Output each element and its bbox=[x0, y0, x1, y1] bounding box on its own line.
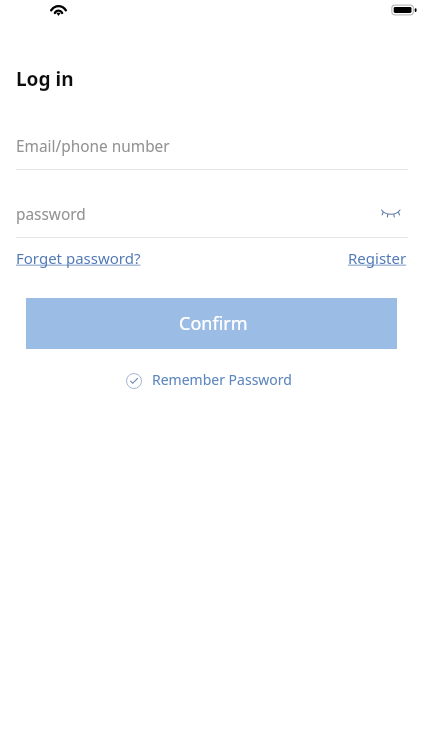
button[interactable]: Confirm bbox=[26, 298, 397, 349]
button[interactable]: Forget password? bbox=[10, 244, 146, 272]
staticText: Forget password? bbox=[16, 248, 141, 268]
button[interactable]: Show password bbox=[376, 200, 407, 238]
staticText: Email/phone number bbox=[16, 136, 170, 157]
staticText: Log in bbox=[16, 66, 74, 92]
button[interactable]: Remember Password bbox=[124, 369, 292, 393]
staticText: Remember Password bbox=[152, 370, 292, 389]
staticText: password bbox=[16, 204, 86, 225]
staticText: Confirm bbox=[179, 311, 248, 336]
button[interactable]: Email/phone number bbox=[16, 132, 407, 170]
button[interactable]: password bbox=[16, 200, 407, 238]
button[interactable]: Register bbox=[342, 244, 413, 272]
staticText: Register bbox=[348, 248, 407, 268]
other: Wi-Fi signal bbox=[40, 0, 80, 22]
other: Battery full bbox=[390, 0, 420, 22]
